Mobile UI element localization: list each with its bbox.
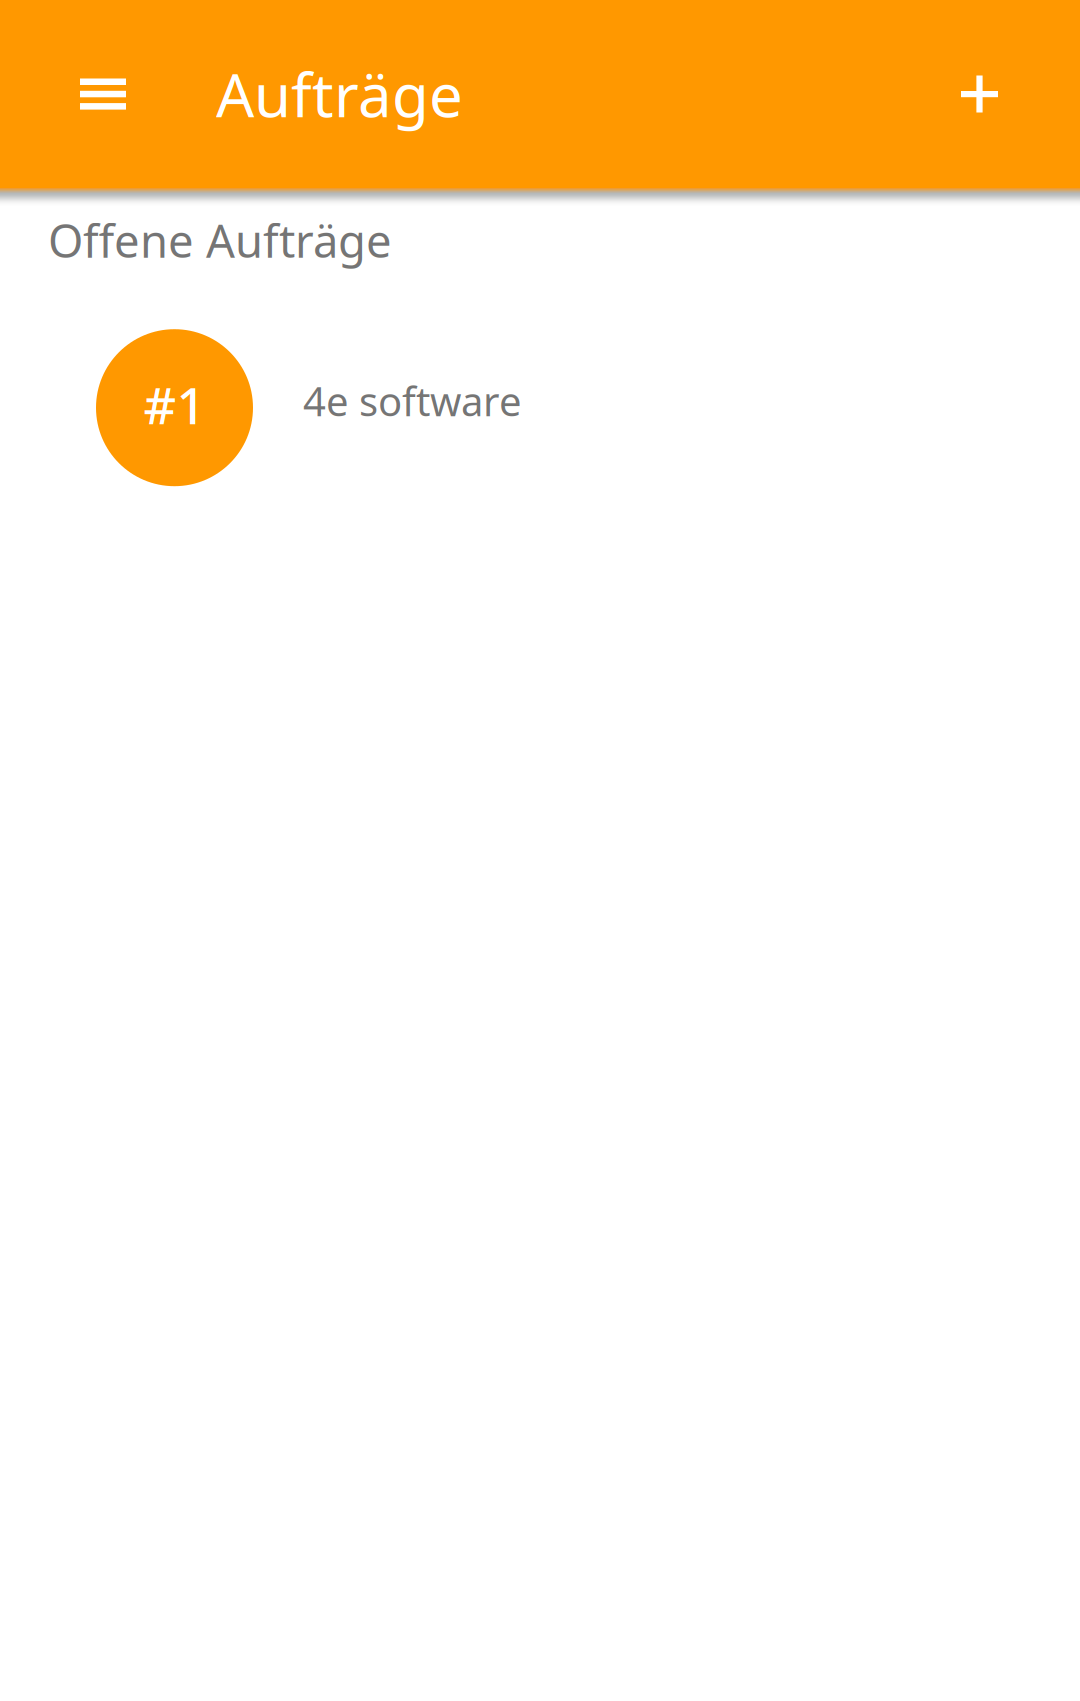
staticText: Offene Aufträge [48, 210, 392, 270]
staticText: 4e software [303, 374, 522, 427]
button[interactable]: Add [917, 0, 1080, 188]
staticText: Aufträge [216, 54, 463, 134]
button[interactable]: #1 [0, 322, 1080, 479]
button[interactable]: Menu [0, 0, 172, 188]
staticText: #1 [143, 371, 205, 438]
